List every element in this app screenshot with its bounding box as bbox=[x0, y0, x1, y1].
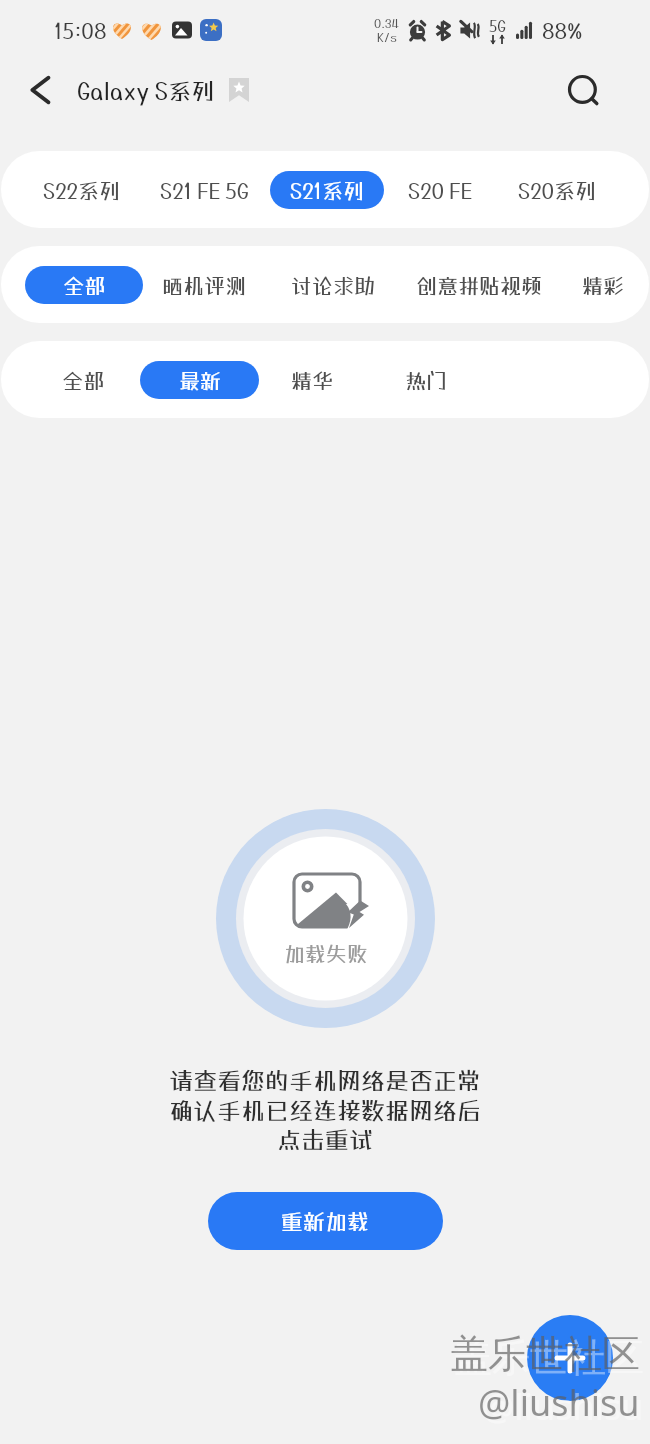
staticText: 最新 bbox=[179, 368, 221, 393]
staticText: S22系列 bbox=[43, 178, 121, 203]
button[interactable]: 最新 bbox=[140, 361, 259, 399]
staticText: S21系列 bbox=[290, 178, 364, 203]
button[interactable]: 创意拼贴视频 bbox=[402, 266, 556, 304]
staticText: 精彩 bbox=[582, 273, 624, 298]
staticText: 精华 bbox=[291, 368, 333, 393]
staticText: 0.34 bbox=[374, 16, 399, 30]
staticText: 加载失败 bbox=[284, 941, 368, 966]
button[interactable]: 全部 bbox=[48, 361, 118, 399]
staticText: Galaxy S系列 bbox=[77, 77, 215, 104]
button[interactable]: S20系列 bbox=[499, 171, 615, 209]
button[interactable]: Back bbox=[17, 67, 63, 113]
button[interactable]: 精华 bbox=[277, 361, 347, 399]
button[interactable]: S21 FE 5G bbox=[141, 171, 267, 209]
staticText: 重新加载 bbox=[281, 1208, 370, 1234]
button[interactable]: 晒机评测 bbox=[148, 266, 260, 304]
button[interactable]: 热门 bbox=[391, 361, 461, 399]
staticText: S20 FE bbox=[408, 178, 473, 203]
staticText: K/s bbox=[377, 30, 397, 44]
button[interactable]: 全部 bbox=[25, 266, 143, 304]
button[interactable]: 讨论求助 bbox=[277, 266, 389, 304]
staticText: 全部 bbox=[62, 368, 104, 393]
staticText: 全部 bbox=[63, 273, 105, 298]
button[interactable]: S20 FE bbox=[388, 171, 492, 209]
button[interactable]: 重新加载 bbox=[208, 1192, 443, 1250]
staticText: 盖乐世社区 bbox=[454, 1334, 644, 1382]
staticText: 5G bbox=[489, 17, 506, 35]
staticText: 15:08 bbox=[54, 18, 107, 43]
staticText: @liushisu bbox=[482, 1382, 644, 1431]
staticText: 88% bbox=[542, 18, 583, 43]
staticText: @liushisu bbox=[478, 1378, 640, 1427]
button[interactable]: Search bbox=[559, 66, 607, 114]
staticText: 讨论求助 bbox=[291, 273, 375, 298]
button[interactable]: 精彩 bbox=[568, 266, 638, 304]
button[interactable]: S22系列 bbox=[24, 171, 140, 209]
staticText: S21 FE 5G bbox=[160, 178, 249, 203]
staticText: S20系列 bbox=[518, 178, 597, 203]
button[interactable]: S21系列 bbox=[270, 171, 384, 209]
staticText: 请查看您的手机网络是否正常 确认手机已经连接数据网络后 点击重试 bbox=[169, 1066, 481, 1153]
staticText: 盖乐世社区 bbox=[450, 1330, 640, 1378]
button[interactable]: Create post bbox=[527, 1315, 613, 1401]
staticText: 热门 bbox=[405, 368, 447, 393]
staticText: 创意拼贴视频 bbox=[416, 273, 542, 298]
staticText: 晒机评测 bbox=[162, 273, 246, 298]
